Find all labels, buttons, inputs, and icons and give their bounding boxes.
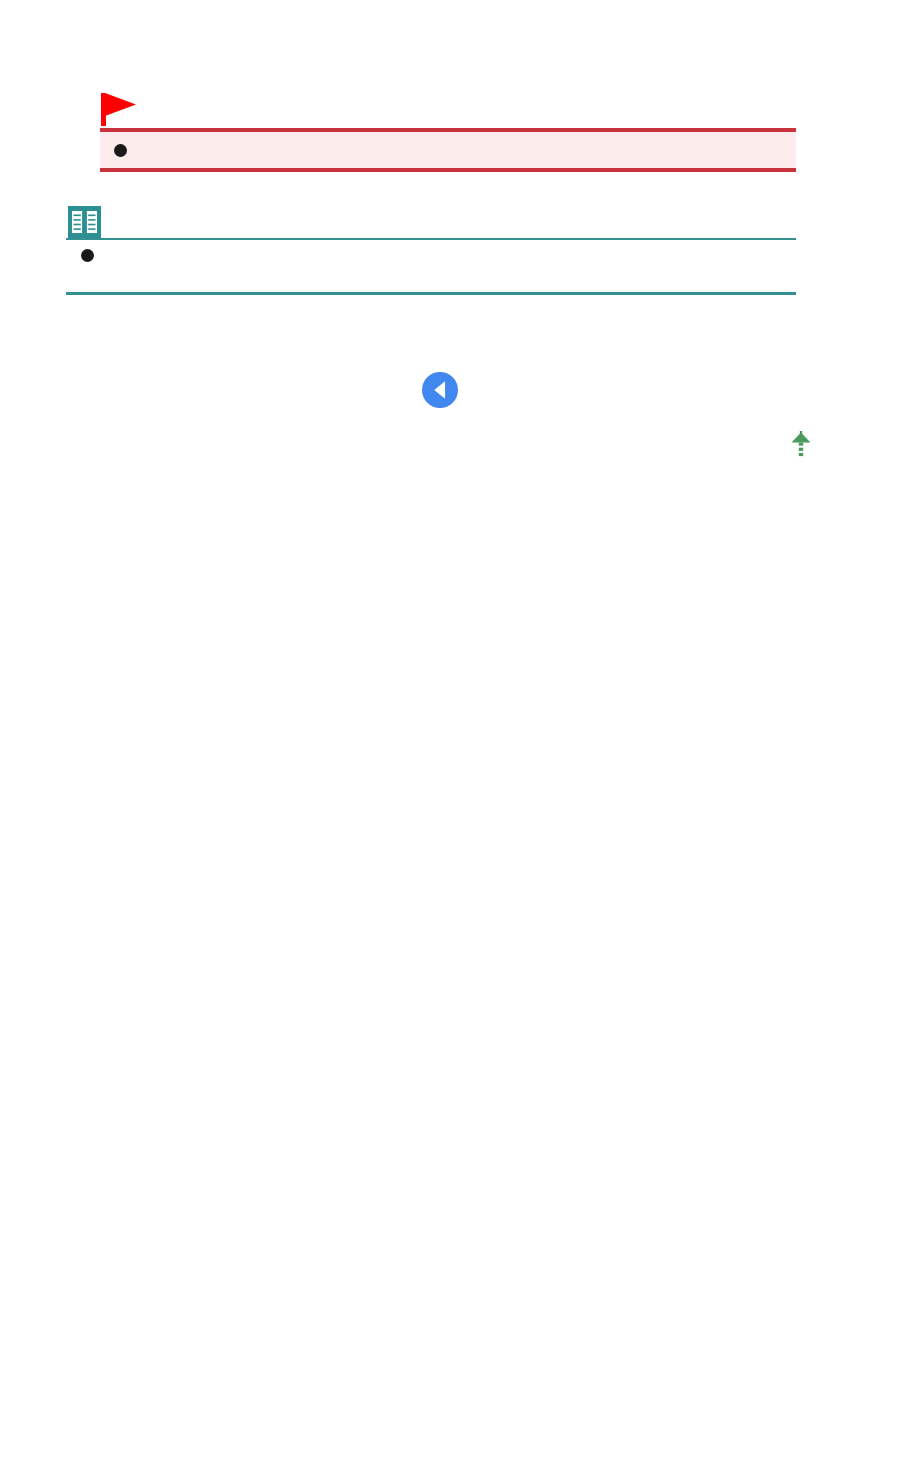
button[interactable]: Back [422,372,458,408]
other: Note [68,206,101,238]
other: Important [98,90,142,130]
button[interactable]: Page top [789,431,813,457]
